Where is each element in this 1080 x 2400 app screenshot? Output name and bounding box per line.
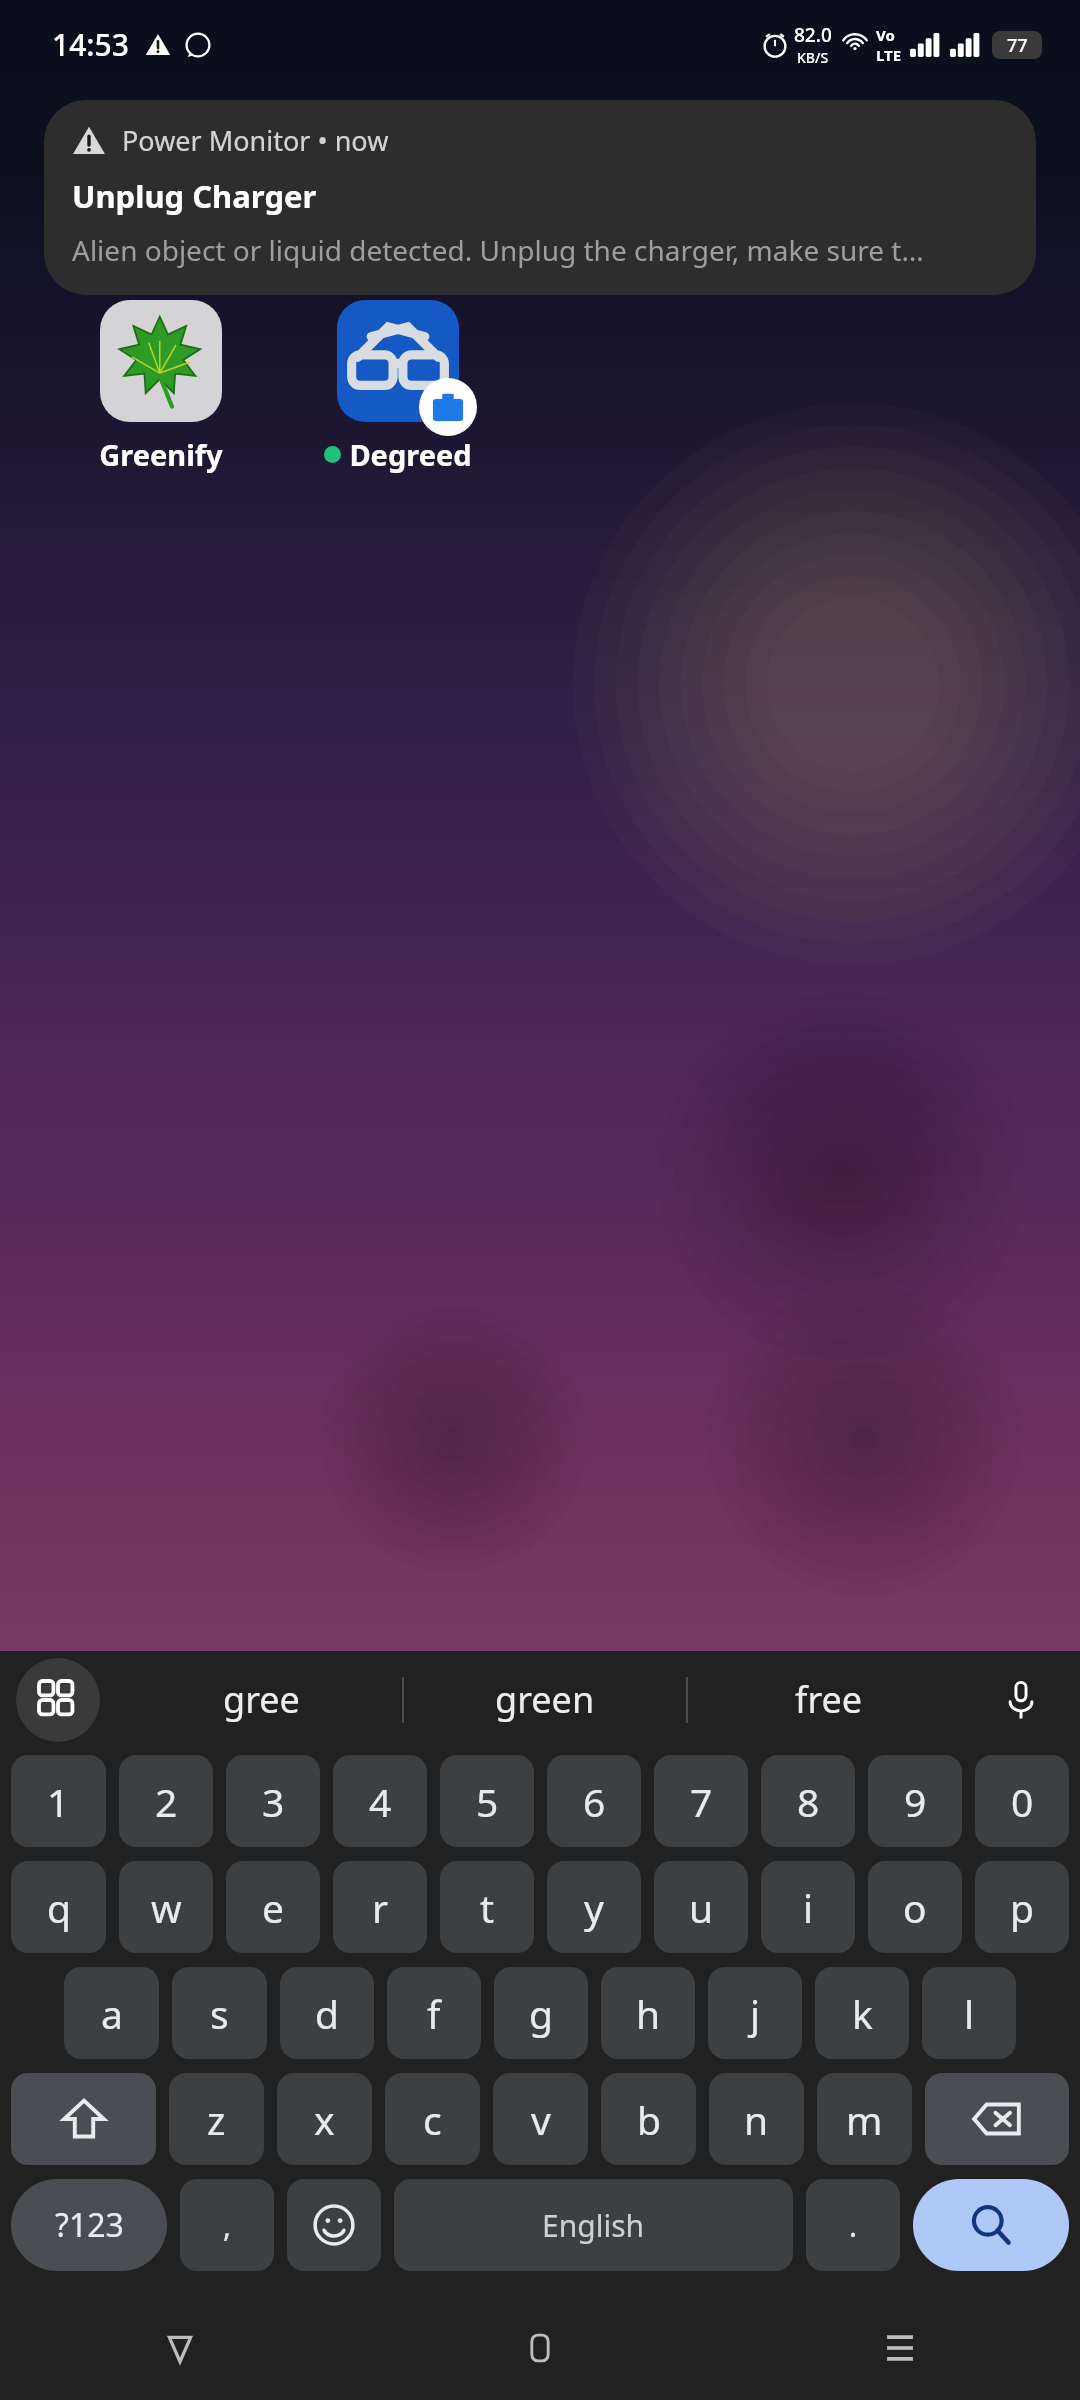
button[interactable]: Keyboard menu <box>16 1658 100 1742</box>
button[interactable]: Degreed <box>323 300 473 474</box>
button[interactable]: . <box>806 2179 900 2271</box>
staticText: 5 <box>476 1775 499 1828</box>
button[interactable]: a <box>64 1967 159 2059</box>
button[interactable]: v <box>493 2073 588 2165</box>
staticText: e <box>262 1881 284 1934</box>
button[interactable]: t <box>440 1861 534 1953</box>
staticText: 77 <box>1007 33 1028 58</box>
staticText: ?123 <box>55 2203 124 2247</box>
button[interactable]: ?123 <box>11 2179 167 2271</box>
button[interactable]: 5 <box>440 1755 534 1847</box>
staticText: a <box>101 1987 123 2040</box>
button[interactable]: Shift <box>11 2073 156 2165</box>
button[interactable]: 1 <box>11 1755 106 1847</box>
staticText: o <box>903 1881 927 1934</box>
button[interactable]: i <box>761 1861 855 1953</box>
button[interactable]: Home <box>360 2296 720 2400</box>
button[interactable]: o <box>868 1861 962 1953</box>
button[interactable]: free <box>688 1651 970 1748</box>
staticText: green <box>495 1675 595 1724</box>
staticText: free <box>795 1675 863 1724</box>
button[interactable]: Voice input <box>986 1665 1056 1735</box>
button[interactable]: Recents <box>720 2296 1080 2400</box>
button[interactable]: 7 <box>654 1755 748 1847</box>
button[interactable]: green <box>404 1651 686 1748</box>
staticText: h <box>636 1987 661 2040</box>
staticText: t <box>480 1881 495 1934</box>
button[interactable]: 2 <box>119 1755 213 1847</box>
button[interactable]: y <box>547 1861 641 1953</box>
staticText: gree <box>223 1675 300 1724</box>
staticText: LTE <box>876 45 902 65</box>
staticText: m <box>846 2093 883 2146</box>
button[interactable]: u <box>654 1861 748 1953</box>
staticText: v <box>531 2093 551 2146</box>
button[interactable]: h <box>601 1967 695 2059</box>
staticText: 9 <box>904 1775 927 1828</box>
staticText: n <box>744 2093 769 2146</box>
button[interactable]: e <box>226 1861 320 1953</box>
button[interactable]: 3 <box>226 1755 320 1847</box>
button[interactable]: n <box>709 2073 804 2165</box>
button[interactable]: English <box>394 2179 793 2271</box>
button[interactable]: 4 <box>333 1755 427 1847</box>
button[interactable]: d <box>280 1967 374 2059</box>
staticText: j <box>750 1987 761 2040</box>
button[interactable]: Search <box>913 2179 1069 2271</box>
button[interactable]: , <box>180 2179 274 2271</box>
staticText: d <box>315 1987 339 2040</box>
button[interactable]: gree <box>120 1651 402 1748</box>
staticText: 82.0 <box>794 22 832 48</box>
button[interactable]: q <box>11 1861 106 1953</box>
staticText: 4 <box>369 1775 392 1828</box>
staticText: c <box>423 2093 442 2146</box>
staticText: Unplug Charger <box>72 175 317 217</box>
button[interactable]: Backspace <box>925 2073 1069 2165</box>
button[interactable]: f <box>387 1967 481 2059</box>
button[interactable]: c <box>385 2073 480 2165</box>
staticText: y <box>584 1881 604 1934</box>
button[interactable]: w <box>119 1861 213 1953</box>
staticText: u <box>689 1881 714 1934</box>
staticText: l <box>964 1987 975 2040</box>
staticText: 3 <box>262 1775 285 1828</box>
button[interactable]: m <box>817 2073 912 2165</box>
button[interactable]: r <box>333 1861 427 1953</box>
staticText: w <box>151 1881 182 1934</box>
staticText: 7 <box>690 1775 713 1828</box>
staticText: Degreed <box>349 435 472 474</box>
staticText: 14:53 <box>52 24 129 65</box>
button[interactable]: Greenify <box>86 300 236 474</box>
staticText: KB/S <box>797 48 829 67</box>
staticText: f <box>427 1987 441 2040</box>
button[interactable]: 6 <box>547 1755 641 1847</box>
button[interactable]: p <box>975 1861 1069 1953</box>
staticText: x <box>314 2093 335 2146</box>
staticText: q <box>47 1881 71 1934</box>
staticText: 8 <box>797 1775 820 1828</box>
button[interactable]: 8 <box>761 1755 855 1847</box>
staticText: s <box>210 1987 229 2040</box>
staticText: 6 <box>583 1775 606 1828</box>
button[interactable]: l <box>922 1967 1016 2059</box>
button[interactable]: j <box>708 1967 802 2059</box>
staticText: Alien object or liquid detected. Unplug … <box>72 231 924 269</box>
button[interactable]: k <box>815 1967 909 2059</box>
button[interactable]: x <box>277 2073 372 2165</box>
staticText: Greenify <box>99 435 223 474</box>
button[interactable]: Power Monitor • now <box>44 100 1036 295</box>
button[interactable]: s <box>172 1967 267 2059</box>
button[interactable]: 9 <box>868 1755 962 1847</box>
button[interactable]: 0 <box>975 1755 1069 1847</box>
staticText: Vo <box>876 25 895 45</box>
button[interactable]: g <box>494 1967 588 2059</box>
staticText: , <box>223 2205 232 2246</box>
staticText: 2 <box>155 1775 178 1828</box>
button[interactable]: Emoji <box>287 2179 381 2271</box>
staticText: z <box>207 2093 226 2146</box>
staticText: b <box>637 2093 661 2146</box>
button[interactable]: z <box>169 2073 264 2165</box>
button[interactable]: b <box>601 2073 696 2165</box>
staticText: i <box>803 1881 814 1934</box>
button[interactable]: Back <box>0 2296 360 2400</box>
